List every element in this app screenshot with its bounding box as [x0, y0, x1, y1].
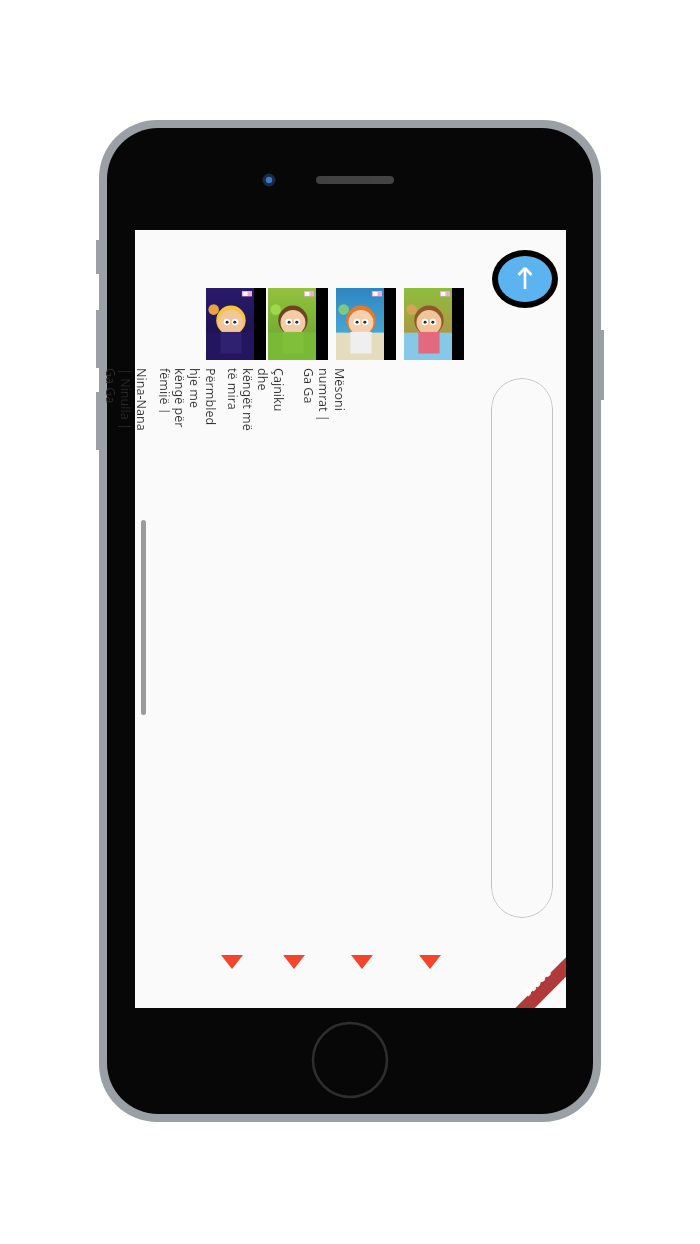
button[interactable]: Nina-Nana | Ninulla | Ga Ga [205, 282, 269, 982]
button[interactable]: Scroll to top [490, 248, 560, 310]
button[interactable]: Kërko video... [491, 378, 553, 918]
button[interactable]: Mësoni numrat | Ga Ga [403, 282, 467, 982]
staticText: Mësoni numrat | Ga Ga [301, 368, 348, 432]
staticText: Çajniku dhe këngët më të mira për fëmijë… [227, 368, 287, 432]
button[interactable]: Çajniku dhe këngët më të mira për fëmijë… [335, 282, 399, 982]
staticText: Përmbledhje me këngë për fëmijë | Ga Ga [159, 368, 219, 432]
button[interactable]: Përmbledhje me këngë për fëmijë | Ga Ga [267, 282, 331, 982]
staticText: DEBUG [521, 966, 553, 998]
staticText: Kërko video... [491, 396, 493, 458]
staticText: Nina-Nana | Ninulla | Ga Ga [103, 368, 150, 432]
